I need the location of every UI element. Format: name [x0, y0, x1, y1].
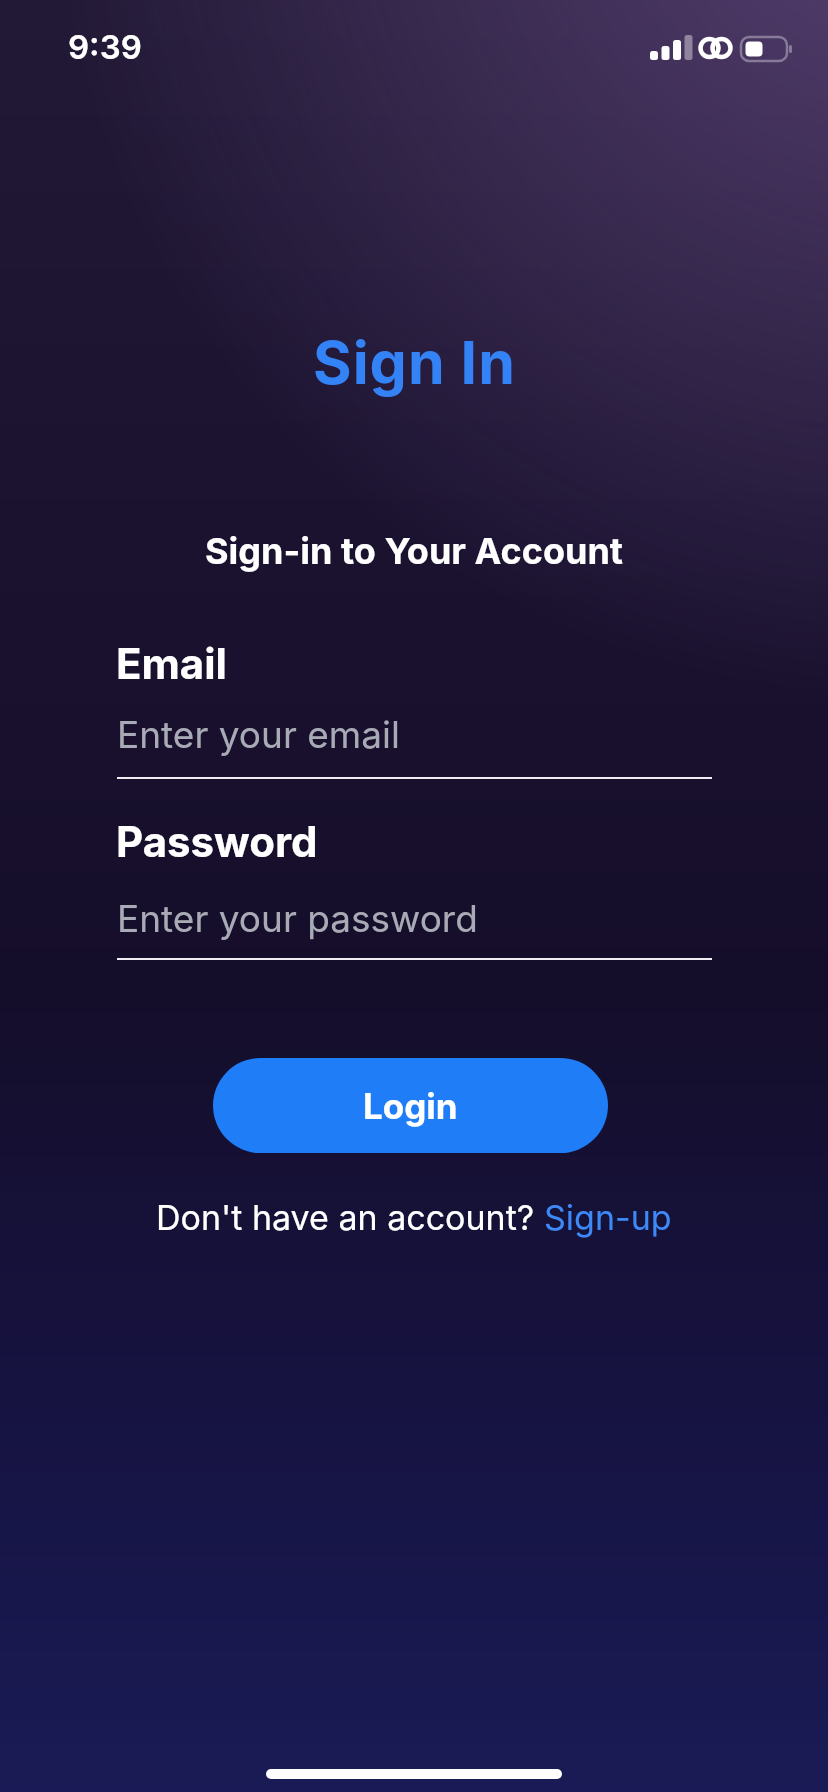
- staticText: Sign-up: [544, 1197, 672, 1238]
- staticText: 9:39: [68, 27, 142, 67]
- staticText: Don't have an account?: [156, 1197, 544, 1238]
- staticText: Sign In: [313, 327, 516, 398]
- staticText: Sign-in to Your Account: [205, 529, 624, 573]
- staticText: Enter your password: [117, 896, 478, 941]
- staticText: Email: [116, 638, 227, 689]
- staticText: Login: [363, 1085, 458, 1127]
- staticText: Enter your email: [117, 712, 400, 757]
- staticText: Password: [116, 816, 318, 867]
